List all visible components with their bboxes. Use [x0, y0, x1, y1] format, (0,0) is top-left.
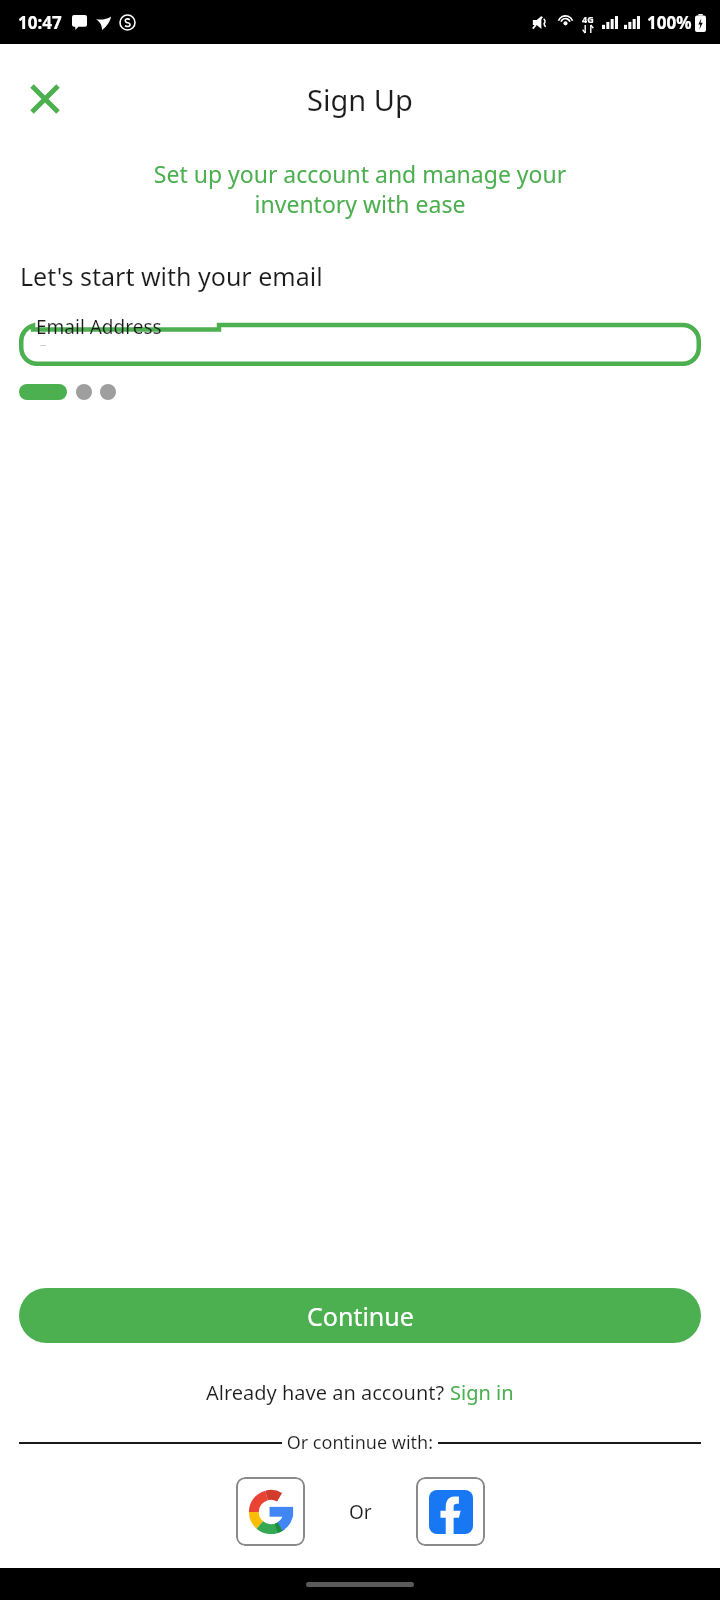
- staticText: Set up your account and manage your inve…: [18, 158, 702, 219]
- staticText: Already have an account?: [206, 1379, 450, 1406]
- button[interactable]: Continue with Google: [236, 1477, 305, 1546]
- staticText: 4G: [582, 13, 594, 25]
- staticText: Continue: [307, 1299, 414, 1333]
- staticText: Or: [349, 1499, 372, 1525]
- staticText: Or continue with:: [282, 1430, 438, 1455]
- staticText: Email Address: [36, 314, 162, 340]
- staticText: Sign Up: [307, 80, 413, 119]
- button[interactable]: Continue: [19, 1288, 701, 1343]
- button[interactable]: Sign in: [450, 1379, 514, 1406]
- staticText: Let's start with your email: [20, 259, 323, 293]
- staticText: –: [40, 335, 47, 353]
- button[interactable]: Continue with Facebook: [416, 1477, 485, 1546]
- staticText: 10:47: [18, 11, 62, 34]
- button[interactable]: Email Address: [19, 314, 701, 366]
- staticText: Sign in: [450, 1379, 514, 1406]
- button[interactable]: Close: [22, 76, 68, 122]
- staticText: 100%: [647, 11, 692, 34]
